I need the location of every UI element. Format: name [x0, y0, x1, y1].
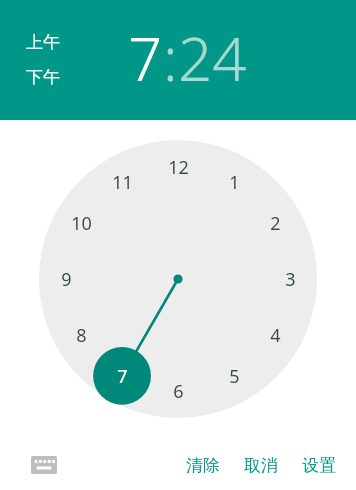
button[interactable]: [39, 140, 317, 418]
button[interactable]: 1: [217, 168, 251, 196]
button[interactable]: 6: [161, 377, 195, 405]
staticText: 清除: [186, 455, 220, 476]
button[interactable]: 上午: [24, 31, 62, 54]
button[interactable]: 12: [161, 153, 195, 181]
button[interactable]: Switch to keyboard input: [20, 441, 68, 489]
staticText: 设置: [302, 455, 336, 476]
button[interactable]: 10: [64, 209, 98, 237]
staticText: 10: [71, 211, 92, 236]
staticText: 7: [128, 17, 163, 99]
staticText: 4: [270, 323, 281, 348]
button[interactable]: 7: [128, 17, 163, 99]
button[interactable]: 24: [178, 17, 247, 99]
staticText: 7: [117, 364, 128, 389]
button[interactable]: 5: [217, 362, 251, 390]
button[interactable]: 设置: [296, 449, 342, 482]
staticText: 3: [285, 267, 296, 292]
button[interactable]: 9: [49, 265, 83, 293]
staticText: 11: [112, 170, 133, 195]
button[interactable]: 2: [258, 209, 292, 237]
staticText: 24: [178, 17, 247, 99]
staticText: 5: [229, 364, 240, 389]
button[interactable]: 清除: [180, 449, 226, 482]
staticText: 6: [173, 379, 184, 404]
staticText: 12: [168, 155, 189, 180]
button[interactable]: 11: [105, 168, 139, 196]
staticText: 1: [229, 170, 240, 195]
button[interactable]: 3: [273, 265, 307, 293]
staticText: 8: [76, 323, 87, 348]
button[interactable]: 8: [64, 321, 98, 349]
button[interactable]: 4: [258, 321, 292, 349]
staticText: 下午: [26, 67, 60, 88]
button[interactable]: 下午: [24, 66, 62, 89]
button[interactable]: 7: [105, 362, 139, 390]
staticText: 取消: [244, 455, 278, 476]
staticText: 上午: [26, 32, 60, 53]
button[interactable]: 取消: [238, 449, 284, 482]
staticText: 9: [61, 267, 72, 292]
staticText: :: [163, 17, 178, 99]
staticText: 2: [270, 211, 281, 236]
